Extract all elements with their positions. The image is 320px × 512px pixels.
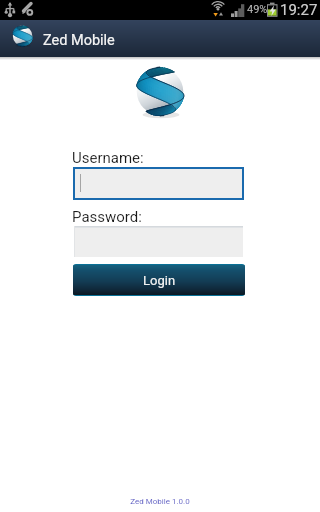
button[interactable]: Login bbox=[73, 264, 245, 296]
staticText: Zed Mobile 1.0.0 bbox=[130, 497, 190, 506]
staticText: 49% bbox=[247, 3, 268, 16]
staticText: Login bbox=[143, 273, 176, 288]
button[interactable] bbox=[74, 226, 243, 257]
button[interactable] bbox=[73, 167, 244, 200]
staticText: Password: bbox=[72, 208, 142, 226]
staticText: Username: bbox=[72, 149, 144, 167]
staticText: 19:27 bbox=[280, 1, 318, 19]
staticText: Zed Mobile bbox=[43, 32, 115, 49]
